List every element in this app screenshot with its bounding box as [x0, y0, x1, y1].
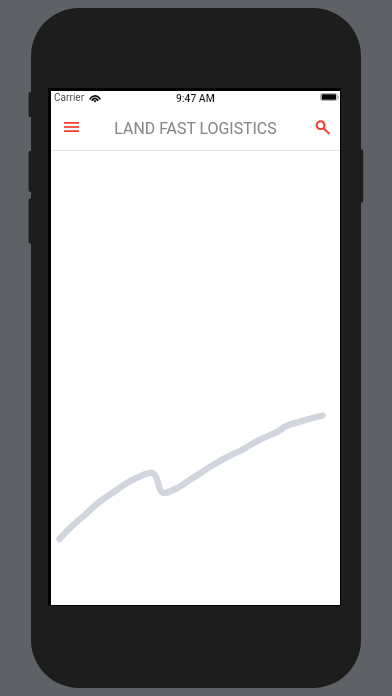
- staticText: Carrier: [54, 92, 85, 104]
- staticText: 9:47 AM: [176, 92, 215, 104]
- staticText: LAND FAST LOGISTICS: [114, 119, 277, 138]
- button[interactable]: Search: [307, 111, 339, 143]
- button[interactable]: Open navigation menu: [55, 111, 87, 143]
